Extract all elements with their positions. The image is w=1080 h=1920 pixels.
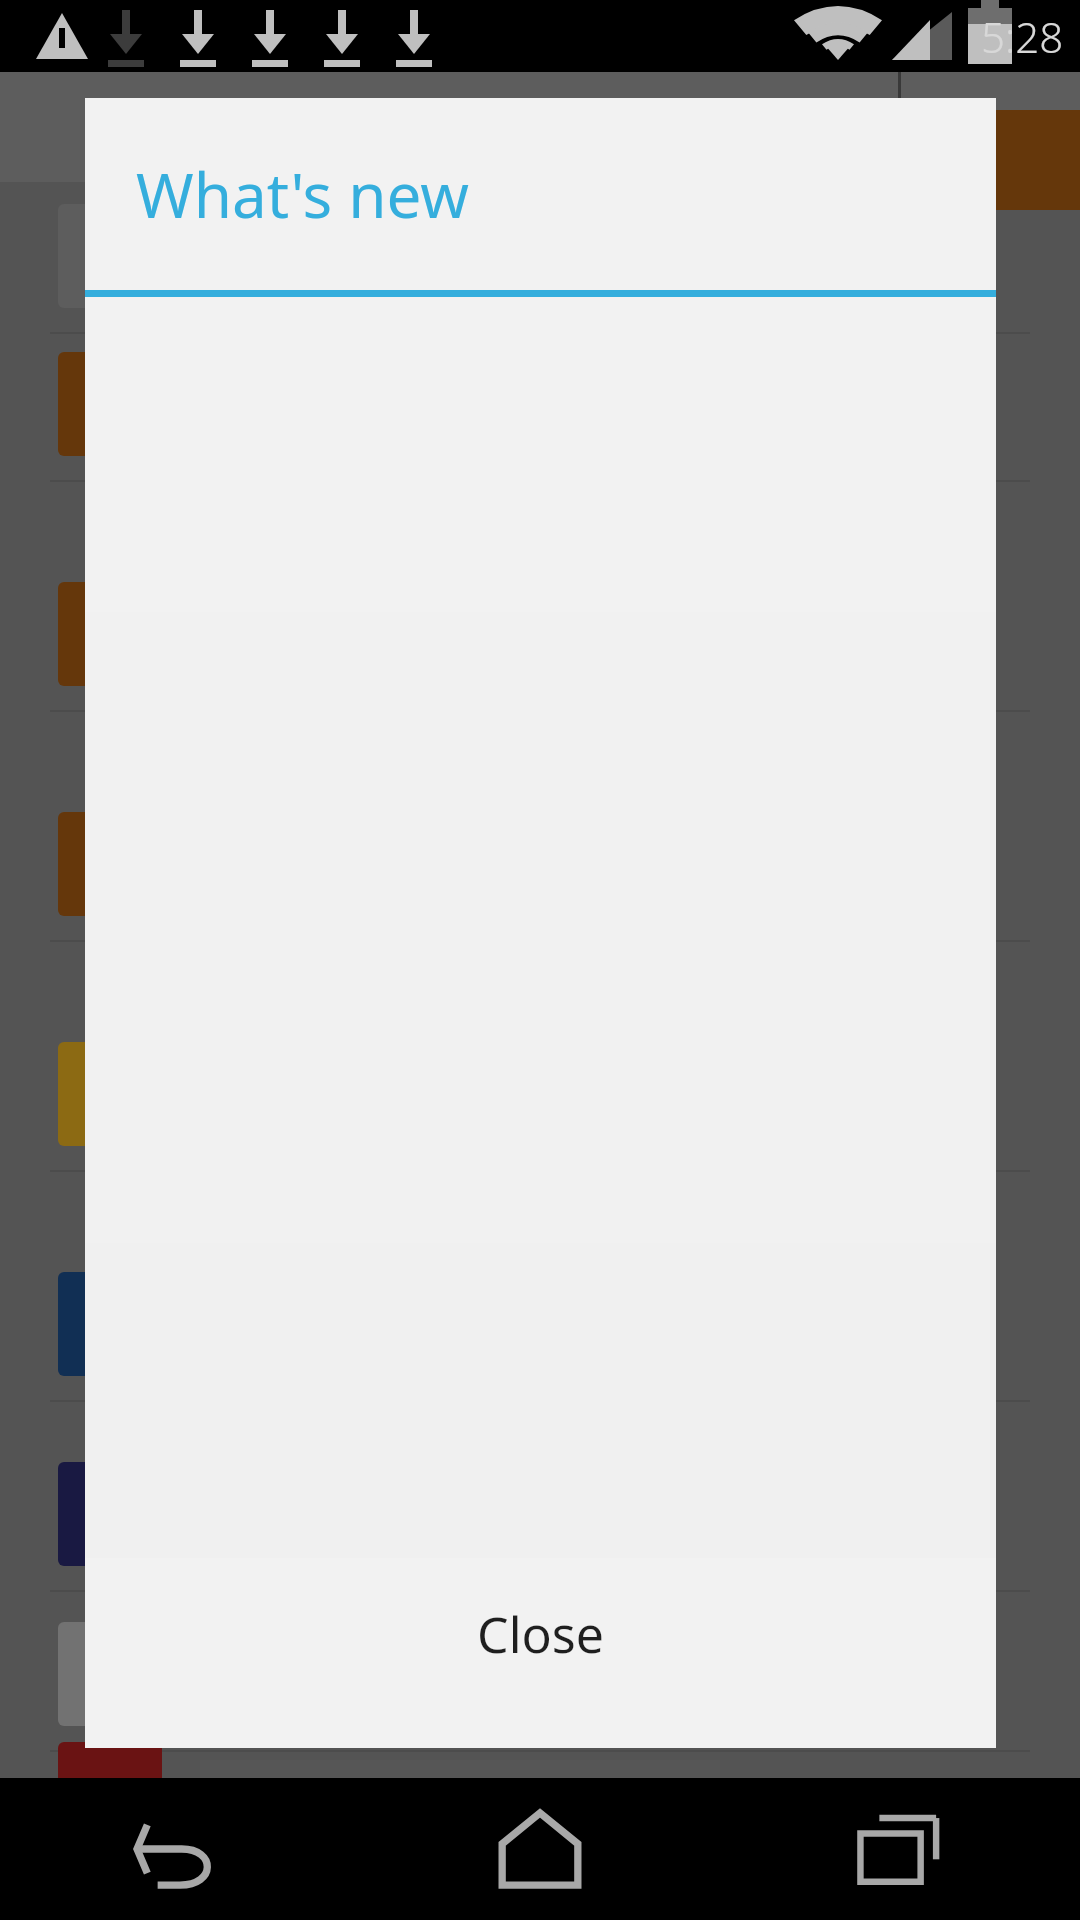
button[interactable]: Home xyxy=(360,1778,720,1920)
button[interactable]: Back xyxy=(0,1778,360,1920)
staticText: Close xyxy=(477,1600,604,1668)
staticText: What's new xyxy=(136,152,470,236)
staticText: 5:28 xyxy=(981,8,1064,65)
button[interactable]: Recent apps xyxy=(720,1778,1080,1920)
button[interactable]: Close xyxy=(85,1558,996,1710)
